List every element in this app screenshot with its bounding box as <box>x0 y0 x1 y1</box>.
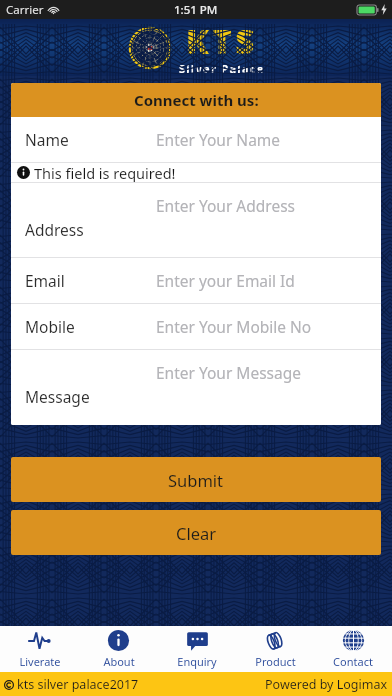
button[interactable]: Product <box>236 629 314 669</box>
button[interactable]: Enter Your Address <box>11 183 381 257</box>
staticText: Enter Your Message <box>156 362 301 383</box>
staticText: Name <box>25 129 69 150</box>
staticText: Email <box>25 270 65 291</box>
staticText: Connect with us: <box>134 90 259 110</box>
staticText: Message <box>25 386 90 407</box>
button[interactable]: Submit <box>11 457 381 502</box>
staticText: 1:51 PM <box>174 2 218 18</box>
button[interactable]: About <box>79 629 158 669</box>
button[interactable]: Mobile <box>11 304 381 349</box>
staticText: Enter Your Mobile No <box>156 316 312 337</box>
staticText: Product <box>255 654 296 669</box>
button[interactable]: Email <box>11 258 381 303</box>
staticText: Mobile <box>25 316 75 337</box>
staticText: Powered by Logimax <box>265 676 388 693</box>
staticText: Contact <box>333 654 373 669</box>
button[interactable]: Enter Your Message <box>11 350 381 425</box>
staticText: kts silver palace2017 <box>17 676 139 693</box>
button[interactable]: Connect with us: <box>11 83 381 117</box>
staticText: This field is required! <box>34 163 176 182</box>
staticText: Enter Your Name <box>156 129 281 150</box>
button[interactable]: Liverate <box>0 629 79 669</box>
staticText: Enter your Email Id <box>156 270 295 291</box>
staticText: Enter Your Address <box>156 195 296 216</box>
staticText: About <box>103 654 135 669</box>
staticText: Silver Palace <box>179 61 265 73</box>
staticText: Enquiry <box>177 654 217 669</box>
button[interactable]: Contact <box>314 629 392 669</box>
staticText: Clear <box>176 522 217 544</box>
staticText: Submit <box>168 469 224 491</box>
staticText: KTS <box>186 19 258 64</box>
staticText: Carrier <box>6 2 44 18</box>
button[interactable]: Enquiry <box>158 629 236 669</box>
button[interactable]: Clear <box>11 510 381 555</box>
staticText: Address <box>25 219 84 240</box>
button[interactable]: Name <box>11 117 381 162</box>
staticText: Liverate <box>19 654 61 669</box>
